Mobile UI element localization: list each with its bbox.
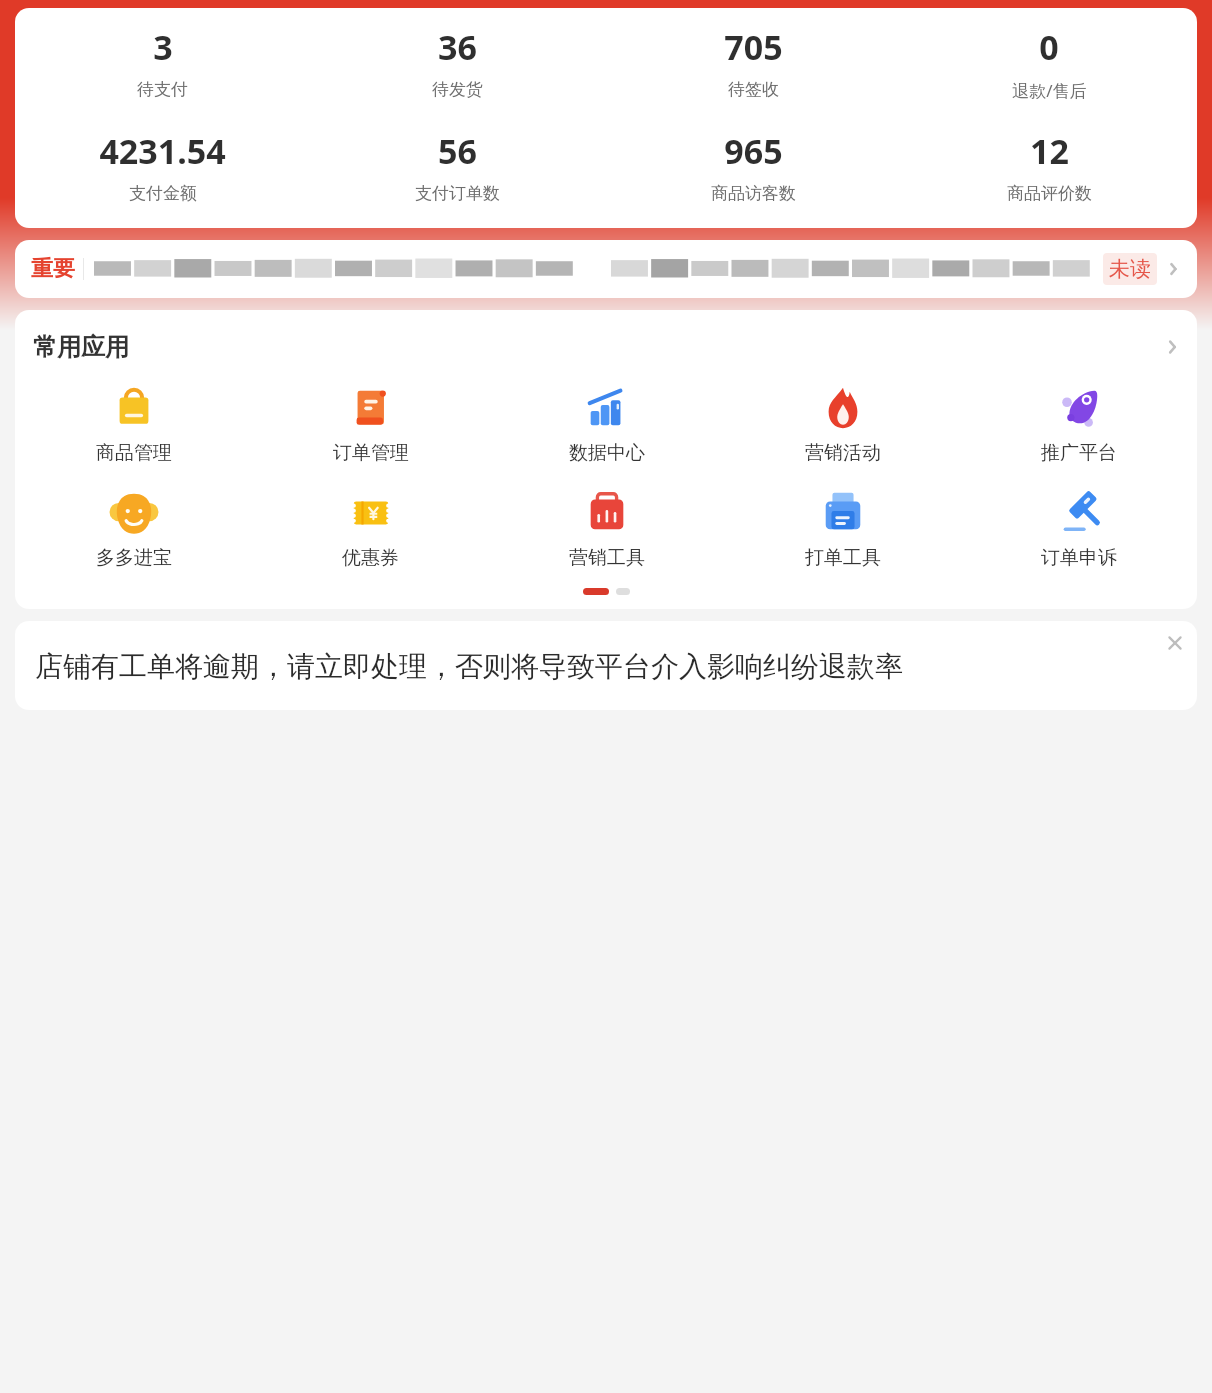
staticText: 36 xyxy=(438,24,477,70)
button[interactable]: 965 xyxy=(605,126,901,206)
button[interactable]: 商品管理 xyxy=(15,384,252,465)
button[interactable]: Close xyxy=(1165,633,1185,653)
button[interactable]: 营销工具 xyxy=(489,489,725,570)
staticText: 待签收 xyxy=(728,79,779,100)
staticText: 未读 xyxy=(1109,256,1151,282)
staticText: 705 xyxy=(724,24,783,70)
button[interactable]: 店铺有工单将逾期，请立即处理，否则将导致平台介入影响纠纷退款率 xyxy=(15,621,1197,710)
button[interactable]: 3 xyxy=(15,22,310,102)
staticText: 营销活动 xyxy=(805,441,881,465)
button[interactable]: 4231.54 xyxy=(15,126,310,206)
button[interactable]: 56 xyxy=(310,126,605,206)
button[interactable]: 优惠券 xyxy=(252,489,489,570)
button[interactable]: 12 xyxy=(901,126,1197,206)
staticText: 订单申诉 xyxy=(1041,546,1117,570)
staticText: 数据中心 xyxy=(569,441,645,465)
staticText: 965 xyxy=(724,128,783,174)
button[interactable]: 营销活动 xyxy=(725,384,961,465)
staticText: 3 xyxy=(153,24,173,70)
staticText: 4231.54 xyxy=(99,128,226,174)
staticText: 常用应用 xyxy=(33,332,129,362)
button[interactable]: 重要 xyxy=(15,240,1197,298)
button[interactable]: 36 xyxy=(310,22,605,102)
staticText: 商品访客数 xyxy=(711,183,796,204)
other: More apps xyxy=(1163,338,1181,356)
button[interactable]: 多多进宝 xyxy=(15,489,252,570)
button[interactable]: 数据中心 xyxy=(489,384,725,465)
staticText: 店铺有工单将逾期，请立即处理，否则将导致平台介入影响纠纷退款率 xyxy=(35,649,903,684)
staticText: 优惠券 xyxy=(342,546,399,570)
staticText: 退款/售后 xyxy=(1012,79,1087,102)
button[interactable]: 推广平台 xyxy=(961,384,1197,465)
staticText: 营销工具 xyxy=(569,546,645,570)
staticText: 支付金额 xyxy=(129,183,197,204)
staticText: 商品评价数 xyxy=(1007,183,1092,204)
button[interactable]: 常用应用 xyxy=(15,310,1197,368)
staticText: 打单工具 xyxy=(805,546,881,570)
button[interactable]: 0 xyxy=(901,22,1197,104)
button[interactable]: 订单管理 xyxy=(252,384,489,465)
staticText: 56 xyxy=(438,128,477,174)
staticText: 待发货 xyxy=(432,79,483,100)
staticText: 12 xyxy=(1030,128,1069,174)
button[interactable]: 705 xyxy=(605,22,901,102)
button[interactable]: 打单工具 xyxy=(725,489,961,570)
staticText: 支付订单数 xyxy=(415,183,500,204)
button[interactable]: 订单申诉 xyxy=(961,489,1197,570)
staticText: 多多进宝 xyxy=(96,546,172,570)
staticText: 订单管理 xyxy=(333,441,409,465)
staticText: 商品管理 xyxy=(96,441,172,465)
staticText: 0 xyxy=(1039,24,1059,70)
staticText: 重要 xyxy=(31,255,75,283)
staticText: 推广平台 xyxy=(1041,441,1117,465)
staticText: 待支付 xyxy=(137,79,188,100)
